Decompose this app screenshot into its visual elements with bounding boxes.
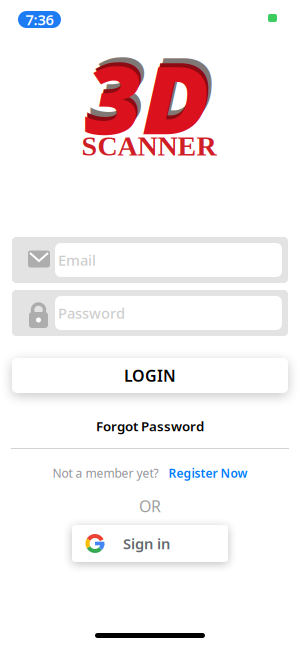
button[interactable]: Forgot Password [96,417,204,435]
staticText: OR [139,495,161,517]
staticText: Sign in [123,534,170,553]
button[interactable]: Email [12,237,288,283]
staticText: 3D [93,27,211,151]
staticText: 3D [88,36,206,160]
button[interactable]: Register Now [168,465,247,481]
staticText: Not a member yet? [52,465,158,481]
staticText: Register Now [168,465,247,481]
button[interactable]: Sign in [72,525,228,562]
staticText: SCANNER [81,130,216,161]
staticText: Password [58,303,125,323]
staticText: Forgot Password [96,417,204,435]
staticText: 7:36 [25,10,53,29]
button[interactable]: LOGIN [12,358,288,393]
staticText: Email [58,250,96,270]
button[interactable]: Password [12,290,288,336]
staticText: LOGIN [124,365,176,386]
staticText: 3D [90,32,208,156]
